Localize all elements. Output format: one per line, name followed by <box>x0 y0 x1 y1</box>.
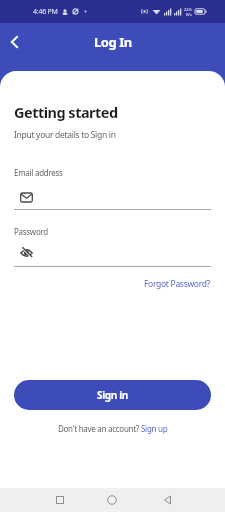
button[interactable] <box>14 247 211 259</box>
staticText: Sign in <box>97 388 128 402</box>
button[interactable]: Sign up <box>141 423 168 434</box>
staticText: Sign up <box>141 423 168 434</box>
button[interactable] <box>14 192 211 203</box>
button[interactable] <box>48 488 72 512</box>
staticText: Input your details to Sign in <box>14 129 116 141</box>
staticText: 22.6 <box>184 7 192 12</box>
staticText: Don't have an account? <box>58 423 141 434</box>
button[interactable]: Forgot Password? <box>144 278 211 290</box>
button[interactable]: Sign in <box>14 380 211 410</box>
staticText: 4:46 PM <box>33 7 58 17</box>
staticText: Password <box>14 226 48 237</box>
button[interactable] <box>156 488 180 512</box>
staticText: K/s <box>186 12 192 17</box>
staticText: Getting started <box>14 102 118 122</box>
staticText: Log In <box>94 33 132 51</box>
staticText: Email address <box>14 167 63 178</box>
staticText: Forgot Password? <box>144 278 211 290</box>
button[interactable] <box>100 488 124 512</box>
button[interactable] <box>6 34 22 50</box>
